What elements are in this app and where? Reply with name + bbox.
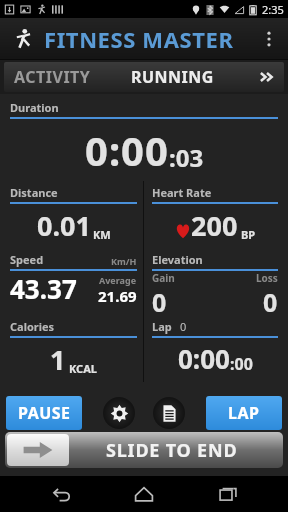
button[interactable]: ACTIVITY [4, 62, 284, 92]
staticText: Lap [152, 319, 172, 334]
staticText: SLIDE TO END [106, 438, 238, 463]
button[interactable]: Back [38, 476, 84, 512]
staticText: BP [241, 227, 256, 242]
button[interactable]: Recent apps [205, 476, 251, 512]
staticText: Calories [10, 319, 55, 334]
staticText: Distance [10, 185, 58, 200]
staticText: 0:00 [85, 123, 169, 177]
staticText: FITNESS MASTER [44, 24, 234, 54]
staticText: 200 [191, 207, 238, 244]
staticText: 0.01 [37, 207, 91, 244]
button[interactable]: LAP [206, 396, 282, 430]
staticText: KCAL [69, 361, 97, 376]
staticText: KM [93, 227, 111, 242]
staticText: Average [99, 274, 137, 286]
staticText: Elevation [152, 252, 203, 267]
staticText: Km/H [111, 255, 137, 267]
button[interactable]: Duration [0, 94, 288, 181]
staticText: 0 [152, 285, 167, 315]
staticText: ACTIVITY [14, 66, 91, 88]
staticText: RUNNING [131, 66, 214, 88]
button[interactable]: Notes [153, 397, 185, 429]
staticText: 2:35 [262, 2, 284, 17]
staticText: :00 [230, 353, 253, 375]
button[interactable]: Slide to end workout [5, 432, 283, 468]
staticText: :03 [169, 141, 204, 174]
button[interactable]: Calories [0, 315, 143, 382]
staticText: Speed [10, 252, 44, 267]
button[interactable]: Speed [0, 248, 143, 315]
staticText: 0:00 [178, 341, 230, 376]
staticText: 21.69 [98, 286, 137, 306]
button[interactable]: Settings [103, 397, 135, 429]
staticText: LAP [228, 402, 260, 424]
button[interactable]: Elevation [144, 248, 288, 315]
staticText: PAUSE [18, 402, 71, 424]
button[interactable]: Distance [0, 181, 143, 248]
staticText: Gain [152, 271, 175, 285]
staticText: Heart Rate [152, 185, 212, 200]
button[interactable]: More options [250, 20, 288, 58]
staticText: 43.37 [10, 271, 77, 306]
staticText: 0 [263, 285, 278, 315]
button[interactable]: PAUSE [6, 396, 82, 430]
button[interactable]: Heart Rate [144, 181, 288, 248]
button[interactable]: Lap [144, 315, 288, 382]
staticText: Loss [256, 271, 278, 285]
staticText: 1 [50, 341, 66, 378]
staticText: 0 [180, 319, 187, 334]
button[interactable]: Home [121, 476, 167, 512]
staticText: Duration [10, 100, 59, 115]
